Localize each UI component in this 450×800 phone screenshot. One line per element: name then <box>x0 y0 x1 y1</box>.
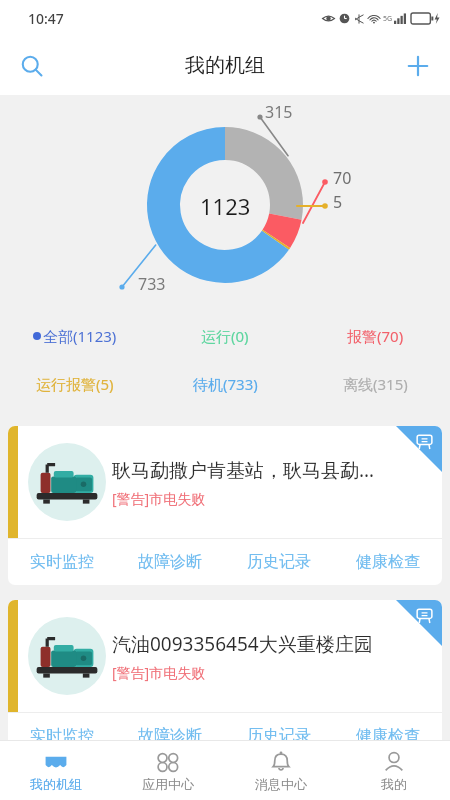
staticText: 健康检查 <box>356 552 420 572</box>
button[interactable]: 全部(1123) <box>0 324 150 348</box>
button[interactable]: Search <box>10 44 54 88</box>
staticText: 健康检查 <box>356 726 420 746</box>
staticText: 汽油0093356454大兴重楼庄园 <box>112 631 373 657</box>
staticText: 我的机组 <box>185 53 265 78</box>
staticText: 历史记录 <box>247 552 311 572</box>
staticText: 应用中心 <box>142 776 194 792</box>
button[interactable]: 我的 <box>337 741 450 800</box>
button[interactable]: Add <box>396 44 440 88</box>
staticText: 实时监控 <box>30 726 94 746</box>
button[interactable]: 历史记录 <box>224 713 333 759</box>
staticText: 运行(0) <box>201 326 249 346</box>
button[interactable]: 实时监控 <box>8 713 116 759</box>
staticText: 70 <box>333 167 352 189</box>
button[interactable]: 健康检查 <box>333 539 442 585</box>
staticText: 历史记录 <box>247 726 311 746</box>
staticText: 运行报警(5) <box>36 374 114 394</box>
button[interactable]: 实时监控 <box>8 539 116 585</box>
staticText: 我的 <box>381 776 407 792</box>
staticText: 5G <box>383 14 393 24</box>
staticText: 1123 <box>200 191 251 221</box>
staticText: 待机(733) <box>193 374 258 394</box>
staticText: 耿马勐撒户肯基站，耿马县勐… <box>112 457 375 483</box>
button[interactable]: 我的机组 <box>0 741 112 800</box>
button[interactable]: 运行报警(5) <box>0 372 150 396</box>
staticText: 315 <box>265 101 293 123</box>
staticText: 报警(70) <box>347 326 404 346</box>
button[interactable]: 消息中心 <box>224 741 337 800</box>
button[interactable]: 离线(315) <box>300 372 450 396</box>
button[interactable]: 应用中心 <box>112 741 224 800</box>
staticText: 5 <box>333 191 343 213</box>
staticText: 离线(315) <box>343 374 408 394</box>
staticText: [警告]市电失败 <box>112 663 206 682</box>
staticText: 实时监控 <box>30 552 94 572</box>
staticText: 10:47 <box>28 9 64 28</box>
button[interactable]: 故障诊断 <box>116 713 224 759</box>
staticText: [警告]市电失败 <box>112 489 206 508</box>
button[interactable]: 健康检查 <box>333 713 442 759</box>
button[interactable]: 故障诊断 <box>116 539 224 585</box>
staticText: 故障诊断 <box>138 726 202 746</box>
button[interactable]: 待机(733) <box>150 372 300 396</box>
staticText: 消息中心 <box>255 776 307 792</box>
button[interactable]: 耿马勐撒户肯基站，耿马县勐… <box>8 426 442 585</box>
staticText: 全部(1123) <box>43 326 117 346</box>
staticText: 733 <box>138 273 166 295</box>
button[interactable]: 报警(70) <box>300 324 450 348</box>
staticText: 我的机组 <box>30 776 82 792</box>
button[interactable]: 运行(0) <box>150 324 300 348</box>
button[interactable]: 汽油0093356454大兴重楼庄园 <box>8 600 442 759</box>
button[interactable]: 历史记录 <box>224 539 333 585</box>
staticText: 故障诊断 <box>138 552 202 572</box>
